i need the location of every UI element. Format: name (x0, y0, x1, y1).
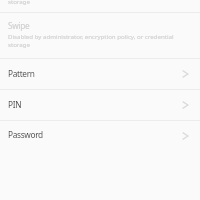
staticText: PIN (8, 99, 175, 110)
other: Open PIN settings (181, 100, 190, 110)
button[interactable]: Swipe (0, 13, 200, 58)
other: Open Password settings (181, 131, 190, 141)
button[interactable]: storage (0, 0, 200, 12)
button[interactable]: Password (0, 121, 200, 150)
button[interactable]: Pattern (0, 59, 200, 89)
staticText: Pattern (8, 68, 175, 79)
other: Open Pattern settings (181, 69, 190, 79)
staticText: Swipe (8, 20, 30, 31)
button[interactable]: PIN (0, 90, 200, 120)
staticText: Disabled by administrator, encryption po… (8, 32, 190, 48)
staticText: storage (8, 0, 30, 5)
staticText: Password (8, 129, 175, 140)
